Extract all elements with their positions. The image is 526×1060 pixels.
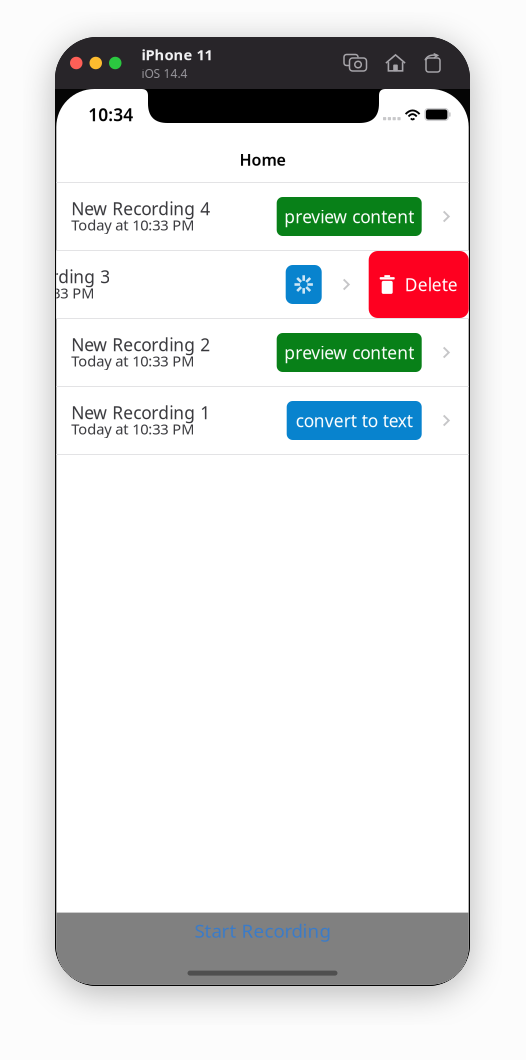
staticText: iOS 14.4 <box>141 65 187 81</box>
button[interactable]: preview content <box>277 197 422 236</box>
staticText: iPhone 11 <box>141 45 212 64</box>
staticText: New Recording 1 <box>71 401 210 424</box>
staticText: Today at 10:33 PM <box>71 351 194 370</box>
button[interactable]: preview content <box>277 333 422 372</box>
button[interactable]: Home <box>385 53 406 72</box>
staticText: 10:34 <box>88 103 133 126</box>
staticText: convert to text <box>296 409 413 432</box>
staticText: Delete <box>405 273 458 296</box>
staticText: New Recording 2 <box>71 333 210 356</box>
staticText: Today at 10:33 PM <box>0 283 94 302</box>
button[interactable]: Delete <box>369 251 469 318</box>
button[interactable]: New Recording 2 <box>56 319 469 386</box>
staticText: preview content <box>284 341 414 364</box>
button[interactable]: Screenshot <box>344 53 368 72</box>
staticText: preview content <box>284 205 414 228</box>
button[interactable]: Rotate device <box>423 53 443 72</box>
staticText: New Recording 3 <box>0 265 110 288</box>
button[interactable]: convert to text <box>287 401 422 440</box>
staticText: Home <box>239 149 285 170</box>
button[interactable]: New Recording 1 <box>56 387 469 454</box>
button[interactable]: New Recording 4 <box>56 183 469 250</box>
staticText: Start Recording <box>194 918 330 943</box>
staticText: Today at 10:33 PM <box>71 215 194 234</box>
staticText: Today at 10:33 PM <box>71 419 194 438</box>
staticText: New Recording 4 <box>71 197 210 220</box>
button[interactable]: Transcribing <box>286 265 322 304</box>
button[interactable]: Start Recording <box>56 918 469 944</box>
